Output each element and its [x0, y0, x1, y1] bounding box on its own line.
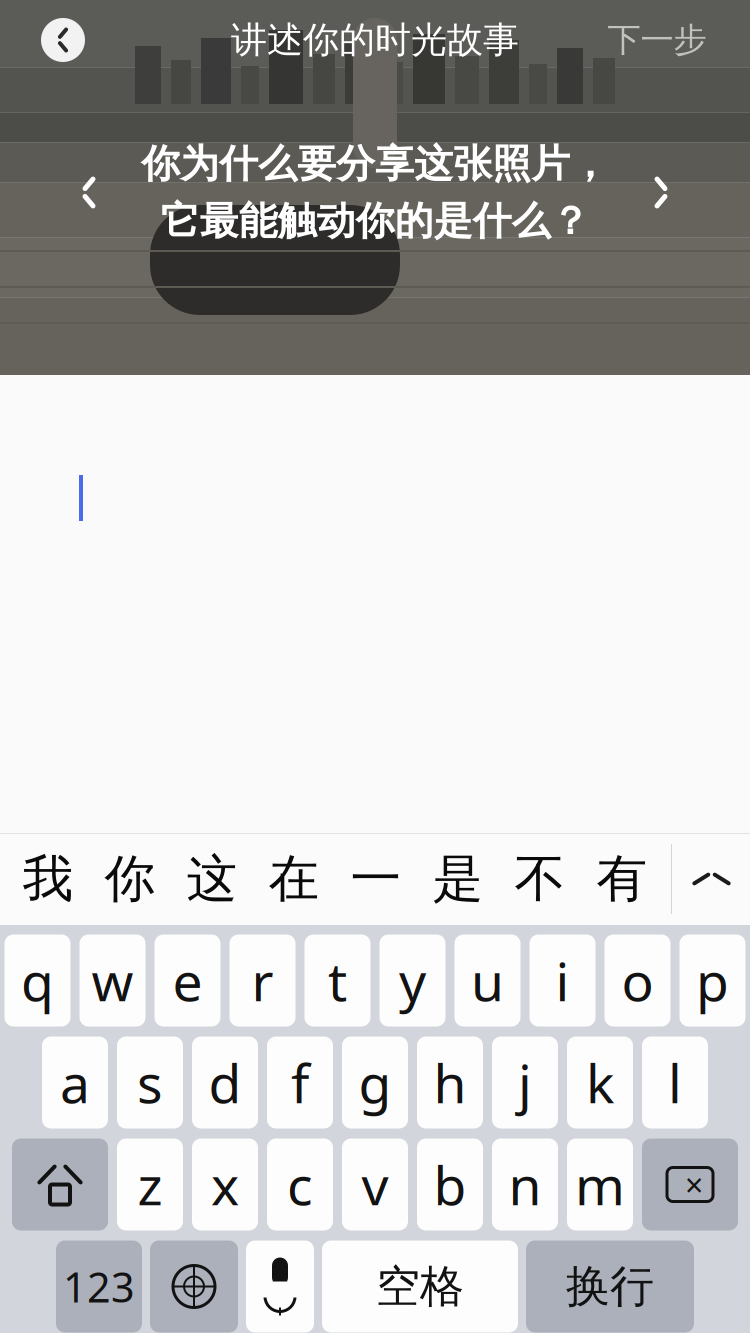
button[interactable]: u: [454, 934, 520, 1026]
button[interactable]: s: [117, 1036, 183, 1128]
staticText: f: [291, 1047, 309, 1118]
staticText: h: [433, 1047, 466, 1118]
button[interactable]: 在: [253, 833, 335, 925]
staticText: 是: [432, 848, 483, 910]
staticText: u: [471, 945, 504, 1016]
staticText: 这: [186, 848, 237, 910]
button[interactable]: 语音输入: [246, 1240, 314, 1332]
staticText: j: [518, 1047, 532, 1118]
button[interactable]: 换行: [526, 1240, 694, 1332]
button[interactable]: h: [417, 1036, 483, 1128]
staticText: m: [575, 1149, 625, 1220]
button[interactable]: o: [604, 934, 670, 1026]
button[interactable]: 我: [7, 833, 89, 925]
button[interactable]: a: [42, 1036, 108, 1128]
button[interactable]: 空格: [322, 1240, 518, 1332]
staticText: z: [137, 1149, 162, 1220]
staticText: 你为什么要分享这张照片，它最能触动你的是什么？: [141, 140, 609, 245]
staticText: v: [361, 1149, 388, 1220]
button[interactable]: g: [342, 1036, 408, 1128]
button[interactable]: d: [192, 1036, 258, 1128]
staticText: i: [555, 945, 569, 1016]
staticText: p: [696, 945, 729, 1016]
button[interactable]: v: [342, 1138, 408, 1230]
button[interactable]: 展开候选词: [672, 833, 750, 925]
staticText: 你: [104, 848, 155, 910]
button[interactable]: p: [679, 934, 745, 1026]
staticText: 在: [268, 848, 319, 910]
button[interactable]: 返回: [33, 10, 93, 70]
staticText: 讲述你的时光故事: [231, 18, 519, 62]
button[interactable]: q: [4, 934, 70, 1026]
button[interactable]: t: [304, 934, 370, 1026]
button[interactable]: 这: [171, 833, 253, 925]
staticText: x: [211, 1149, 239, 1220]
button[interactable]: 删除: [642, 1138, 738, 1230]
staticText: t: [328, 945, 347, 1016]
staticText: 下一步: [607, 19, 706, 60]
staticText: r: [251, 945, 273, 1016]
button[interactable]: 下一个问题: [625, 152, 697, 232]
staticText: e: [172, 945, 202, 1016]
staticText: 换行: [566, 1259, 654, 1313]
staticText: 我: [22, 848, 73, 910]
button[interactable]: 你: [89, 833, 171, 925]
button[interactable]: i: [529, 934, 595, 1026]
staticText: q: [21, 945, 54, 1016]
button[interactable]: 上档: [12, 1138, 108, 1230]
button[interactable]: 上一个问题: [53, 152, 125, 232]
button[interactable]: w: [79, 934, 145, 1026]
staticText: k: [586, 1047, 614, 1118]
button[interactable]: c: [267, 1138, 333, 1230]
staticText: o: [621, 945, 653, 1016]
button[interactable]: r: [229, 934, 295, 1026]
button[interactable]: 有: [581, 833, 663, 925]
staticText: 123: [63, 1259, 135, 1314]
button[interactable]: x: [192, 1138, 258, 1230]
button[interactable]: 一: [335, 833, 417, 925]
staticText: 不: [514, 848, 565, 910]
staticText: b: [433, 1149, 466, 1220]
staticText: y: [399, 945, 426, 1016]
staticText: w: [91, 945, 133, 1016]
button[interactable]: 下一步: [597, 10, 717, 70]
button[interactable]: 是: [417, 833, 499, 925]
button[interactable]: f: [267, 1036, 333, 1128]
button[interactable]: m: [567, 1138, 633, 1230]
button[interactable]: k: [567, 1036, 633, 1128]
button[interactable]: z: [117, 1138, 183, 1230]
staticText: l: [668, 1047, 682, 1118]
staticText: 有: [596, 848, 647, 910]
staticText: g: [358, 1047, 391, 1118]
button[interactable]: e: [154, 934, 220, 1026]
staticText: s: [137, 1047, 163, 1118]
staticText: c: [287, 1149, 313, 1220]
staticText: d: [208, 1047, 241, 1118]
button[interactable]: y: [379, 934, 445, 1026]
button[interactable]: l: [642, 1036, 708, 1128]
staticText: n: [508, 1149, 541, 1220]
staticText: ×: [685, 1163, 703, 1206]
button[interactable]: 切换键盘: [150, 1240, 238, 1332]
button[interactable]: 123: [56, 1240, 142, 1332]
staticText: 空格: [376, 1259, 464, 1313]
button[interactable]: b: [417, 1138, 483, 1230]
button[interactable]: j: [492, 1036, 558, 1128]
button[interactable]: n: [492, 1138, 558, 1230]
button[interactable]: 不: [499, 833, 581, 925]
staticText: 一: [350, 848, 401, 910]
staticText: a: [60, 1047, 90, 1118]
